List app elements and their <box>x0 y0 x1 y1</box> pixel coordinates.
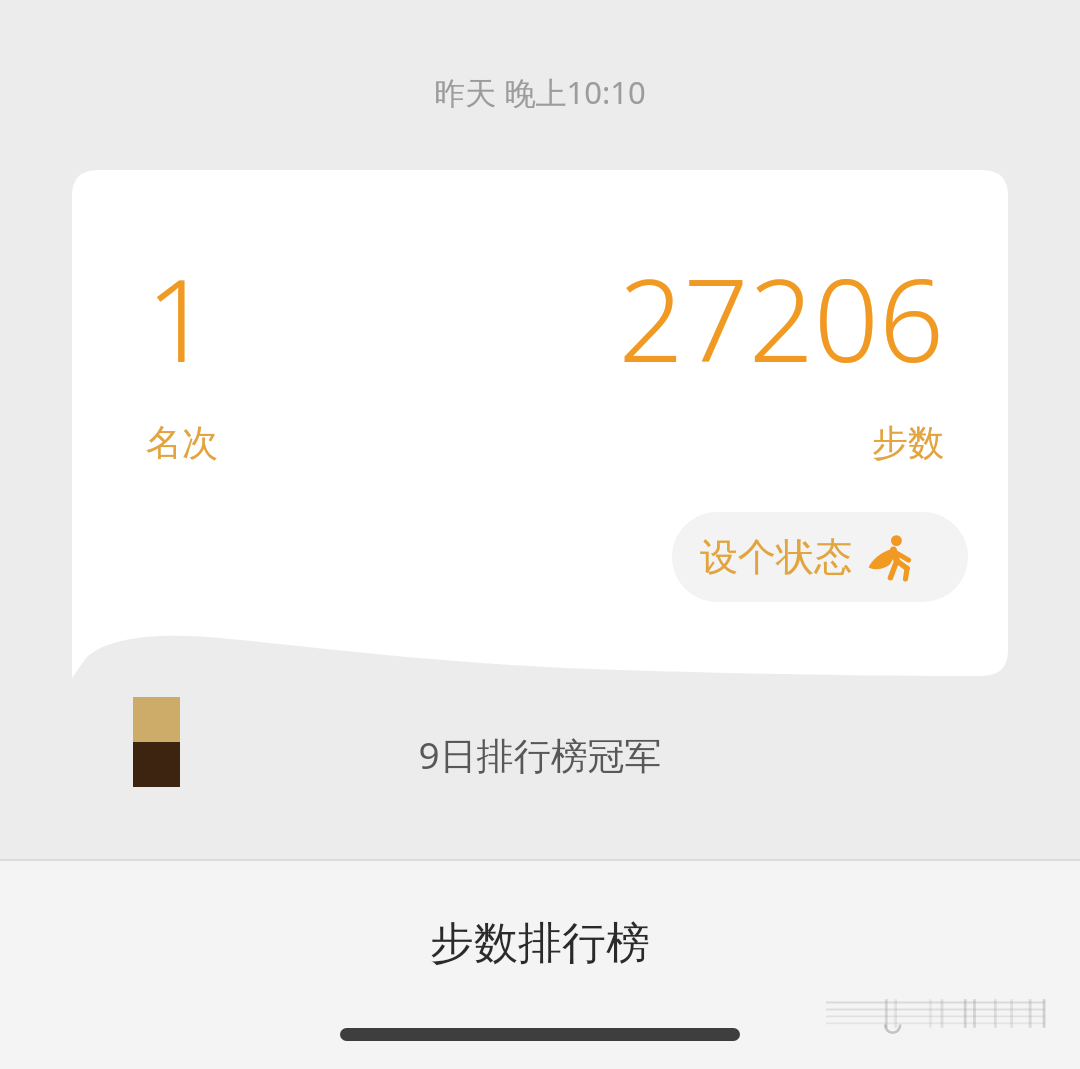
staticText: 步数 <box>744 420 944 465</box>
staticText: 步数排行榜 <box>430 916 650 971</box>
staticText: 昨天 晚上10:10 <box>434 71 646 113</box>
staticText: 1 <box>146 240 212 395</box>
other: 设个状态 <box>866 531 918 583</box>
button[interactable]: 设个状态 <box>672 512 968 602</box>
button[interactable]: 步数排行榜 <box>0 916 1080 971</box>
staticText: 27206 <box>444 240 944 395</box>
staticText: 名次 <box>146 420 218 465</box>
staticText: 9日排行榜冠军 <box>418 729 662 780</box>
staticText: 设个状态 <box>700 533 852 581</box>
